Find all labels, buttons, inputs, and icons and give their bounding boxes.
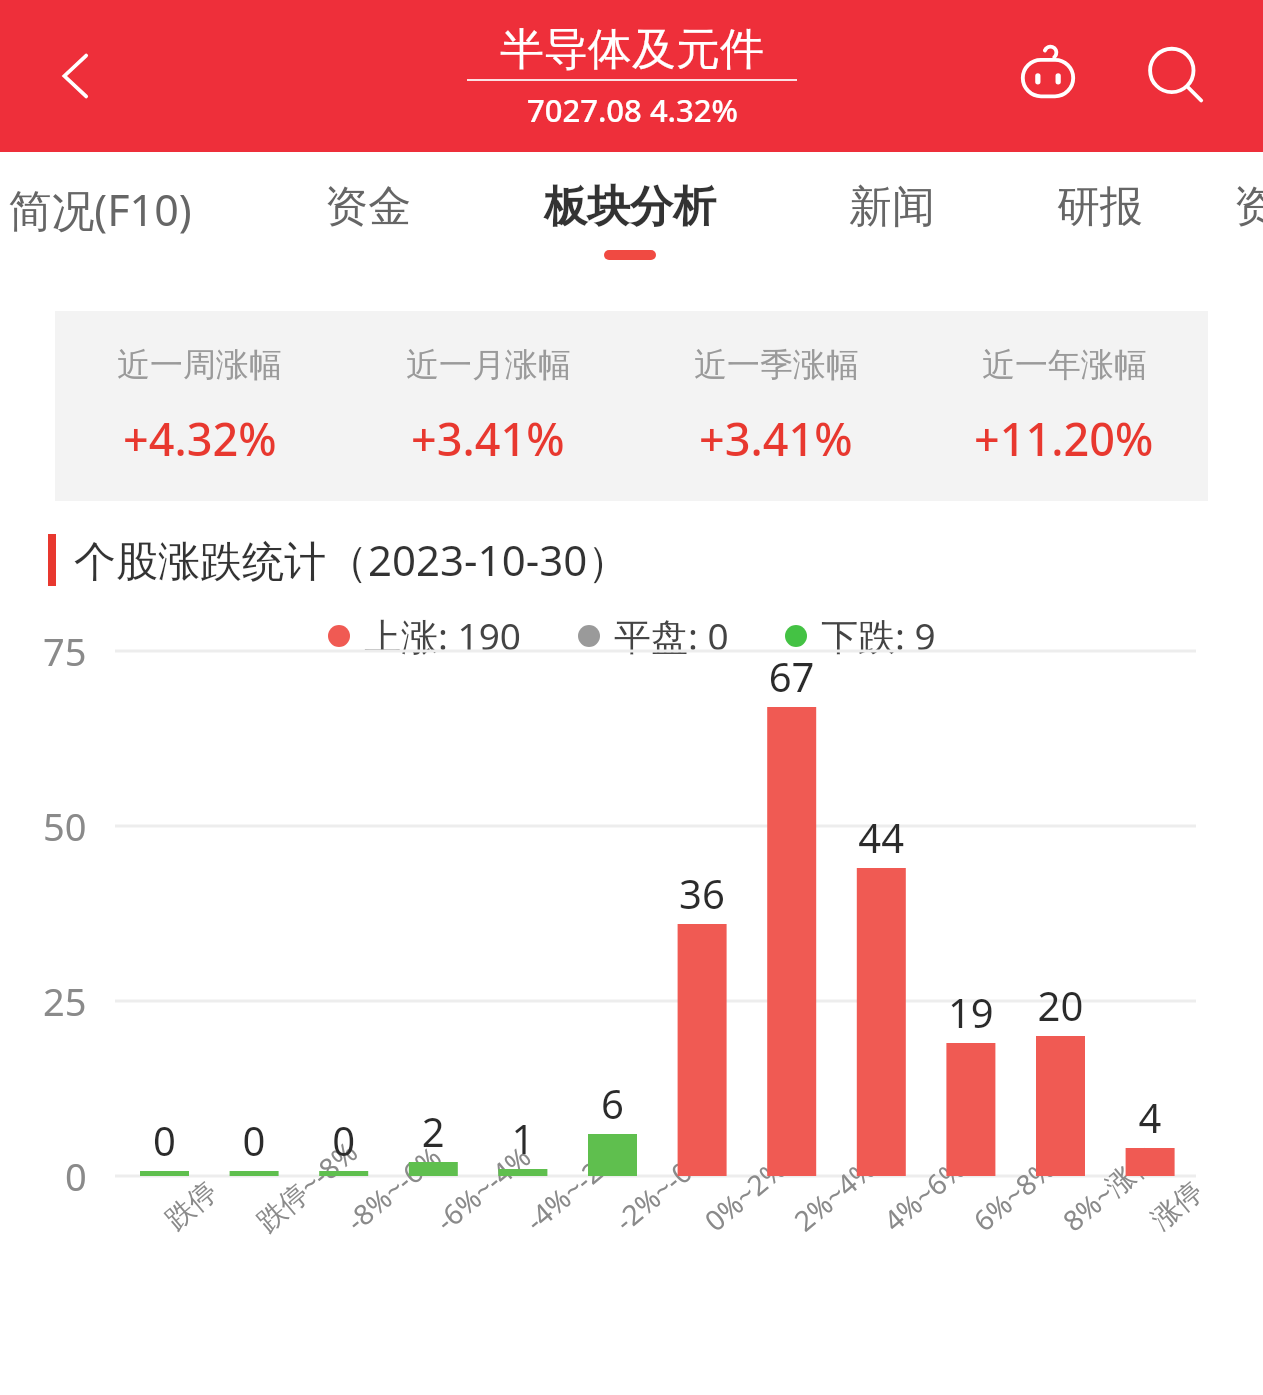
button[interactable]: 上涨: 190 [328,610,522,661]
button[interactable]: 近一年涨幅 [920,311,1208,501]
button[interactable]: 简况(F10) [0,152,230,289]
staticText: +3.41% [699,408,853,469]
staticText: 近一年涨幅 [982,344,1147,386]
staticText: +4.32% [123,408,277,469]
button[interactable]: Back [44,42,112,110]
staticText: 近一月涨幅 [406,344,571,386]
staticText: 上涨: 190 [364,610,522,661]
button[interactable]: 近一季涨幅 [632,311,920,501]
staticText: 近一季涨幅 [694,344,859,386]
staticText: 下跌: 9 [821,610,936,661]
button[interactable]: 近一月涨幅 [344,311,632,501]
button[interactable]: 下跌: 9 [785,610,936,661]
button[interactable]: 资 [1125,152,1263,289]
staticText: 简况(F10) [8,180,192,239]
staticText: 板块分析 [544,180,716,234]
staticText: 半导体及元件 [500,22,764,77]
button[interactable]: 板块分析 [500,152,760,289]
staticText: 平盘: 0 [614,610,729,661]
staticText: 资金 [325,180,411,234]
button[interactable]: AI assistant [1013,41,1083,111]
button[interactable]: 平盘: 0 [578,610,729,661]
staticText: 研报 [1057,180,1143,234]
button[interactable]: 研报 [970,152,1230,289]
button[interactable]: 近一周涨幅 [55,311,344,501]
staticText: 7027.08 4.32% [527,89,738,131]
button[interactable]: Search [1141,41,1211,111]
staticText: +3.41% [411,408,565,469]
staticText: +11.20% [974,408,1154,469]
button[interactable]: 资金 [238,152,498,289]
staticText: 近一周涨幅 [117,344,282,386]
staticText: 资 [1234,180,1263,234]
staticText: 个股涨跌统计（2023-10-30） [74,531,630,588]
staticText: 新闻 [849,180,935,234]
button[interactable]: 新闻 [762,152,1022,289]
